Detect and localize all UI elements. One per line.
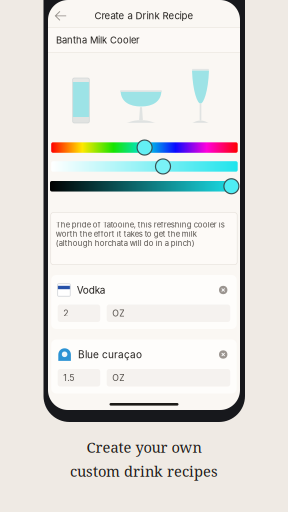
button[interactable]: Bantha Milk Cooler [48,27,240,53]
staticText: Create your own [86,437,201,457]
staticText: custom drink recipes [70,461,218,481]
button[interactable]: Colour slider [51,181,238,191]
button[interactable]: Coupe glass [118,87,164,123]
button[interactable]: The pride of Tatooine, this refreshing c… [51,213,237,265]
staticText: Blue curaçao [78,348,142,361]
staticText: Vodka [77,284,106,296]
button[interactable]: Back [51,6,71,26]
staticText: 1.5 [63,372,74,383]
staticText: The pride of Tatooine, this refreshing c… [56,220,225,248]
button[interactable]: Colour slider [51,161,238,172]
staticText: 2 [63,308,68,318]
button[interactable]: Champagne flute [187,65,213,123]
staticText: OZ [112,308,124,318]
button[interactable]: Remove Vodka [216,283,230,297]
button[interactable]: Colour slider [51,142,238,153]
staticText: Create a Drink Recipe [94,10,193,21]
button[interactable]: Highball glass [66,73,96,123]
staticText: OZ [112,372,124,383]
button[interactable]: Remove Blue curaçao [216,347,230,361]
staticText: Bantha Milk Cooler [56,34,140,46]
